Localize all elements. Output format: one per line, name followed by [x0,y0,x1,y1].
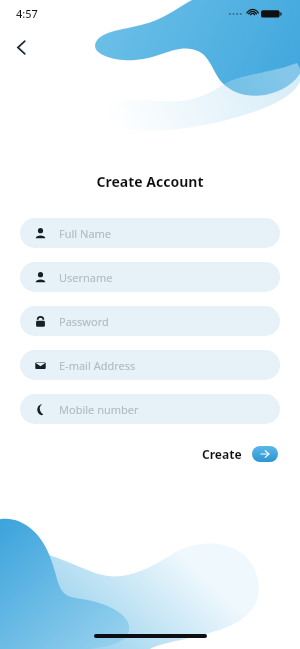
button[interactable]: Back [4,30,38,64]
staticText: 4:57 [16,6,38,21]
button[interactable]: Mobile number [20,394,280,424]
button[interactable]: E-mail Address [20,350,280,380]
staticText: Mobile number [59,402,139,417]
staticText: Full Name [59,226,112,241]
button[interactable]: Password [20,306,280,336]
button[interactable]: Username [20,262,280,292]
button[interactable]: Full Name [20,218,280,248]
button[interactable]: Create [200,444,280,464]
staticText: Create [202,446,242,462]
staticText: E-mail Address [59,358,136,373]
staticText: Create Account [20,172,280,191]
staticText: Password [59,314,109,329]
staticText: Username [59,270,113,285]
